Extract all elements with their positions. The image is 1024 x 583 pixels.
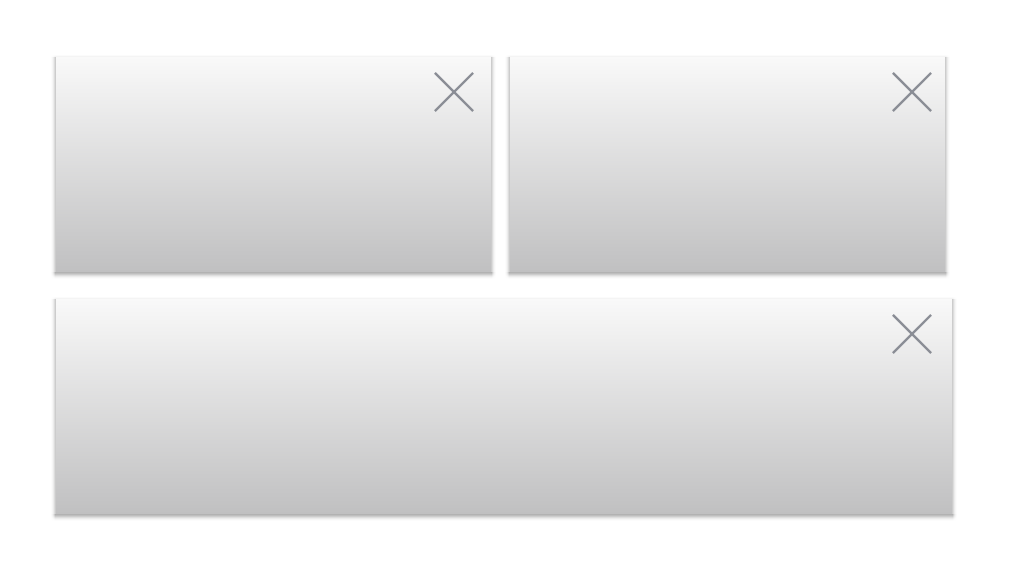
button[interactable]: Close (56, 299, 952, 514)
button[interactable]: Close (434, 72, 474, 112)
button[interactable]: Close (56, 57, 491, 272)
button[interactable]: Close (510, 57, 945, 272)
button[interactable]: Close (892, 314, 932, 354)
button[interactable]: Close (892, 72, 932, 112)
